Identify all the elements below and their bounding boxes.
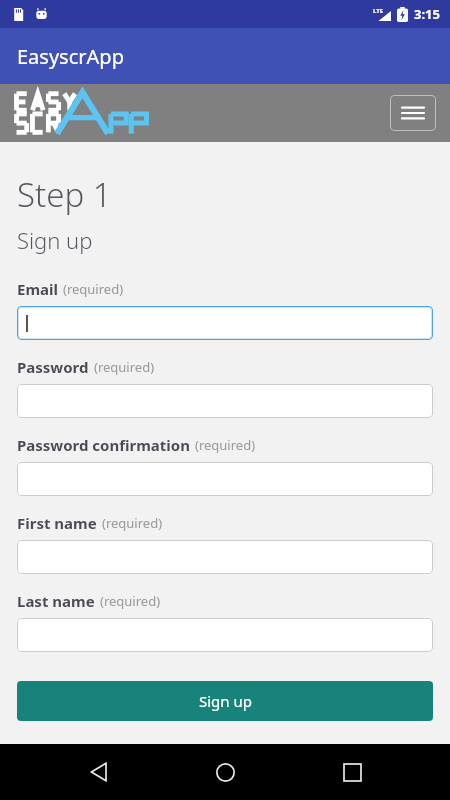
button[interactable]: Menu (390, 95, 436, 131)
staticText: (required) (100, 592, 161, 610)
staticText: Sign up (17, 225, 93, 255)
button[interactable]: Last name (17, 618, 433, 652)
staticText: LTE (373, 7, 384, 15)
staticText: (required) (63, 280, 124, 298)
button[interactable]: Recent apps (324, 744, 380, 800)
staticText: Password (17, 357, 89, 377)
button[interactable]: Password (17, 384, 433, 418)
button[interactable]: First name (17, 540, 433, 574)
staticText: Step 1 (17, 172, 112, 217)
staticText: (required) (94, 358, 155, 376)
button[interactable]: EasyscrApp home (12, 90, 162, 136)
staticText: Sign up (199, 691, 252, 711)
button[interactable]: Sign up (17, 681, 433, 721)
button[interactable]: Home (197, 744, 253, 800)
button[interactable]: Password confirmation (17, 462, 433, 496)
staticText: Email (17, 279, 58, 299)
button[interactable]: Email (17, 306, 433, 340)
staticText: Last name (17, 591, 95, 611)
staticText: 3:15 (414, 5, 440, 23)
staticText: (required) (102, 514, 163, 532)
staticText: (required) (195, 436, 256, 454)
button[interactable]: Back (71, 744, 127, 800)
staticText: Password confirmation (17, 435, 190, 455)
staticText: EasyscrApp (17, 43, 124, 70)
staticText: First name (17, 513, 97, 533)
